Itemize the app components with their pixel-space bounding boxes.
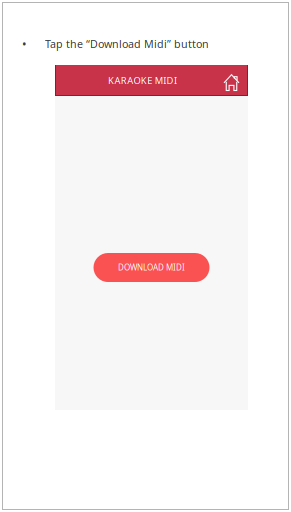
staticText: Tap the “Download Midi” button <box>45 37 209 51</box>
staticText: DOWNLOAD MIDI <box>118 262 185 273</box>
button[interactable]: Home <box>219 68 244 93</box>
button[interactable]: DOWNLOAD MIDI <box>93 253 209 282</box>
staticText: • <box>22 36 27 52</box>
staticText: KARAOKE MIDI <box>108 74 177 87</box>
